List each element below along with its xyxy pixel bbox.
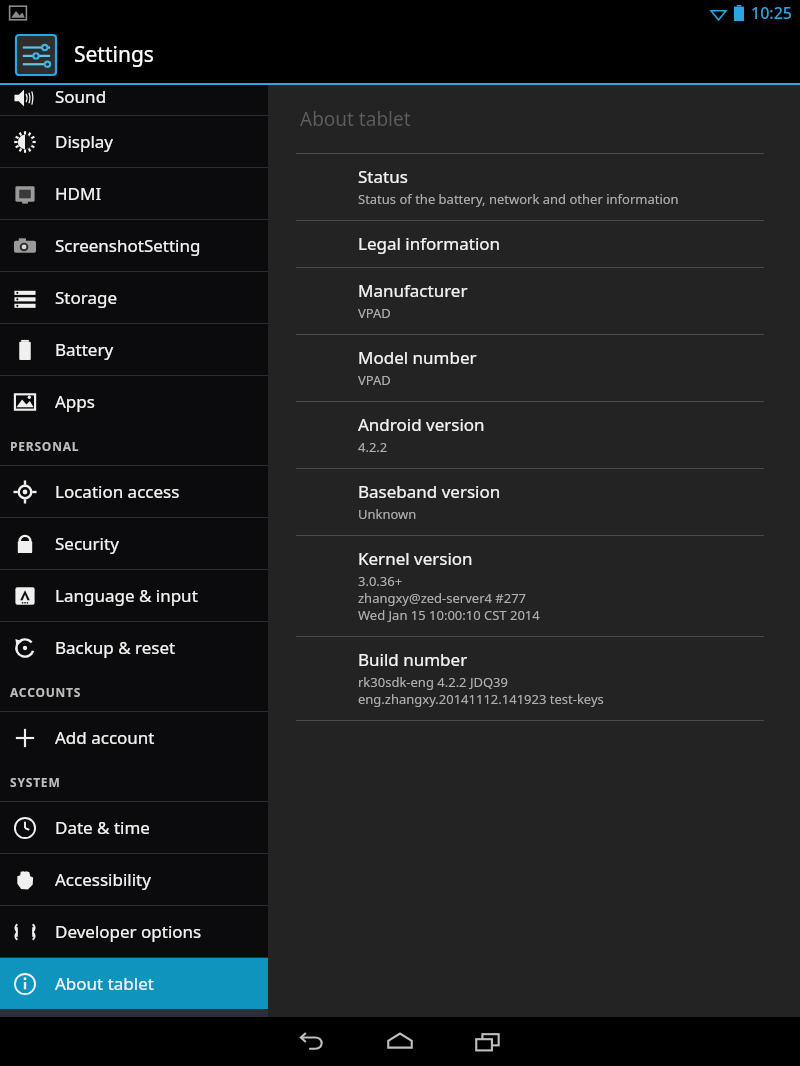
button[interactable]: ScreenshotSetting (0, 220, 268, 271)
staticText: Backup & reset (55, 636, 176, 659)
button[interactable]: Settings (0, 26, 800, 83)
staticText: Status of the battery, network and other… (358, 190, 679, 208)
button[interactable]: Location access (0, 466, 268, 517)
button[interactable]: Kernel version (268, 536, 800, 636)
staticText: Manufacturer (358, 279, 468, 302)
button[interactable]: Status (268, 154, 800, 220)
button[interactable]: Home (365, 1017, 435, 1066)
staticText: 10:25 (751, 2, 792, 24)
staticText: Apps (55, 390, 95, 413)
button[interactable]: Baseband version (268, 469, 800, 535)
staticText: Kernel version (358, 547, 473, 570)
staticText: ACCOUNTS (10, 684, 82, 700)
staticText: Model number (358, 346, 477, 369)
button[interactable]: Back (277, 1017, 347, 1066)
button[interactable]: Language & input (0, 570, 268, 621)
staticText: VPAD (358, 371, 391, 389)
staticText: Display (55, 130, 113, 153)
staticText: Accessibility (55, 868, 151, 891)
button[interactable]: Accessibility (0, 854, 268, 905)
staticText: Storage (55, 286, 118, 309)
staticText: Baseband version (358, 480, 501, 503)
staticText: Security (55, 532, 119, 555)
staticText: About tablet (300, 106, 411, 132)
button[interactable]: Android version (268, 402, 800, 468)
staticText: About tablet (55, 972, 154, 995)
staticText: 4.2.2 (358, 438, 388, 456)
staticText: VPAD (358, 304, 391, 322)
button[interactable]: Legal information (268, 221, 800, 267)
staticText: rk30sdk-eng 4.2.2 JDQ39 eng.zhangxy.2014… (358, 673, 604, 708)
button[interactable]: Manufacturer (268, 268, 800, 334)
staticText: Sound (55, 85, 107, 108)
button[interactable]: Security (0, 518, 268, 569)
button[interactable]: Recents (453, 1017, 523, 1066)
staticText: HDMI (55, 182, 102, 205)
button[interactable]: Add account (0, 712, 268, 763)
button[interactable]: Battery (0, 324, 268, 375)
button[interactable]: Apps (0, 376, 268, 427)
button[interactable]: HDMI (0, 168, 268, 219)
staticText: SYSTEM (10, 774, 61, 790)
button[interactable]: Backup & reset (0, 622, 268, 673)
staticText: Language & input (55, 584, 198, 607)
staticText: ScreenshotSetting (55, 234, 201, 257)
button[interactable]: Date & time (0, 802, 268, 853)
staticText: Android version (358, 413, 485, 436)
button[interactable]: Build number (268, 637, 800, 720)
button[interactable]: Developer options (0, 906, 268, 957)
staticText: PERSONAL (10, 438, 80, 454)
button[interactable]: About tablet (0, 958, 268, 1009)
staticText: Legal information (358, 232, 501, 255)
button[interactable]: Sound (0, 85, 268, 115)
staticText: Status (358, 165, 408, 188)
button[interactable]: Model number (268, 335, 800, 401)
staticText: Location access (55, 480, 180, 503)
staticText: Unknown (358, 505, 417, 523)
staticText: Build number (358, 648, 468, 671)
button[interactable]: Storage (0, 272, 268, 323)
staticText: Date & time (55, 816, 150, 839)
button[interactable]: Display (0, 116, 268, 167)
staticText: Add account (55, 726, 155, 749)
staticText: 3.0.36+ zhangxy@zed-server4 #277 Wed Jan… (358, 572, 540, 624)
staticText: Developer options (55, 920, 202, 943)
staticText: Battery (55, 338, 114, 361)
staticText: Settings (74, 40, 154, 69)
